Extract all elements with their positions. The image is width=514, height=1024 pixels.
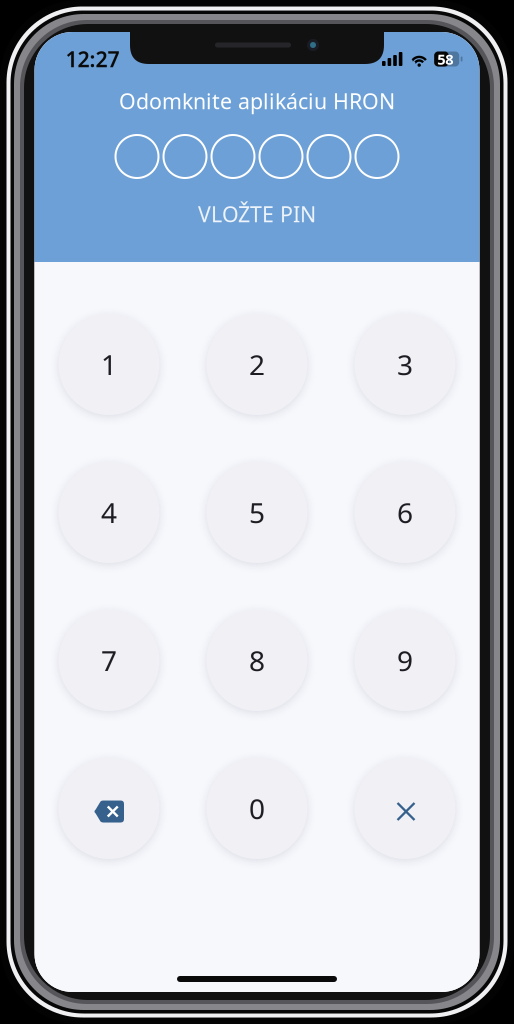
staticText: 5 — [249, 494, 265, 531]
button[interactable]: 9 — [354, 610, 455, 711]
staticText: 58 — [437, 49, 453, 69]
staticText: 1 — [101, 346, 117, 383]
button[interactable]: Cancel — [354, 758, 455, 859]
staticText: 4 — [101, 494, 117, 531]
button[interactable]: 4 — [58, 462, 159, 563]
staticText: 9 — [397, 642, 413, 679]
button[interactable]: 8 — [206, 610, 307, 711]
staticText: Odomknite aplikáciu HRON — [119, 87, 395, 115]
button[interactable]: 2 — [206, 314, 307, 415]
staticText: 12:27 — [65, 45, 119, 73]
button[interactable]: 6 — [354, 462, 455, 563]
staticText: 0 — [249, 790, 265, 827]
button[interactable]: 0 — [206, 758, 307, 859]
button[interactable]: 5 — [206, 462, 307, 563]
staticText: 8 — [249, 642, 265, 679]
staticText: VLOŽTE PIN — [198, 200, 316, 228]
staticText: 7 — [101, 642, 117, 679]
staticText: 6 — [397, 494, 413, 531]
button[interactable]: 3 — [354, 314, 455, 415]
staticText: 2 — [249, 346, 265, 383]
button[interactable]: 1 — [58, 314, 159, 415]
button[interactable]: 7 — [58, 610, 159, 711]
button[interactable]: Delete — [58, 758, 159, 859]
staticText: 3 — [397, 346, 413, 383]
